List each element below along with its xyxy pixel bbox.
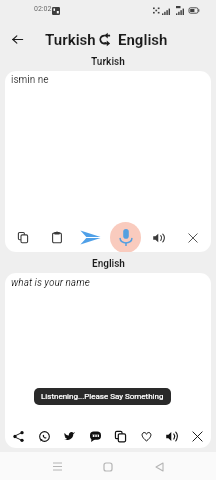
button[interactable]: Close: [190, 429, 205, 444]
staticText: English: [92, 258, 125, 270]
button[interactable]: Translate: [78, 228, 102, 246]
button[interactable]: Clear: [185, 230, 200, 245]
button[interactable]: Paste: [49, 230, 64, 245]
button[interactable]: Back: [152, 459, 167, 474]
button[interactable]: Copy: [15, 230, 30, 245]
staticText: ismin ne: [11, 74, 49, 86]
staticText: Listnening...Please Say Something: [41, 392, 164, 401]
button[interactable]: SMS: [88, 429, 103, 444]
button[interactable]: Listen: [164, 429, 179, 444]
button[interactable]: English: [118, 31, 168, 49]
button[interactable]: Back: [7, 29, 28, 50]
button[interactable]: Swap languages: [97, 32, 111, 46]
button[interactable]: Microphone: [110, 222, 141, 252]
button[interactable]: Home: [100, 459, 115, 474]
button[interactable]: Copy: [113, 429, 128, 444]
button[interactable]: Twitter: [62, 429, 77, 444]
button[interactable]: Share: [11, 429, 26, 444]
button[interactable]: WhatsApp: [37, 429, 52, 444]
button[interactable]: Favourite: [139, 429, 154, 444]
button[interactable]: Recent apps: [50, 459, 65, 474]
button[interactable]: Turkish: [45, 31, 96, 49]
staticText: what is your name: [11, 277, 90, 289]
staticText: Turkish: [91, 56, 125, 68]
staticText: 02:02: [34, 5, 52, 13]
button[interactable]: Listen: [151, 230, 166, 245]
